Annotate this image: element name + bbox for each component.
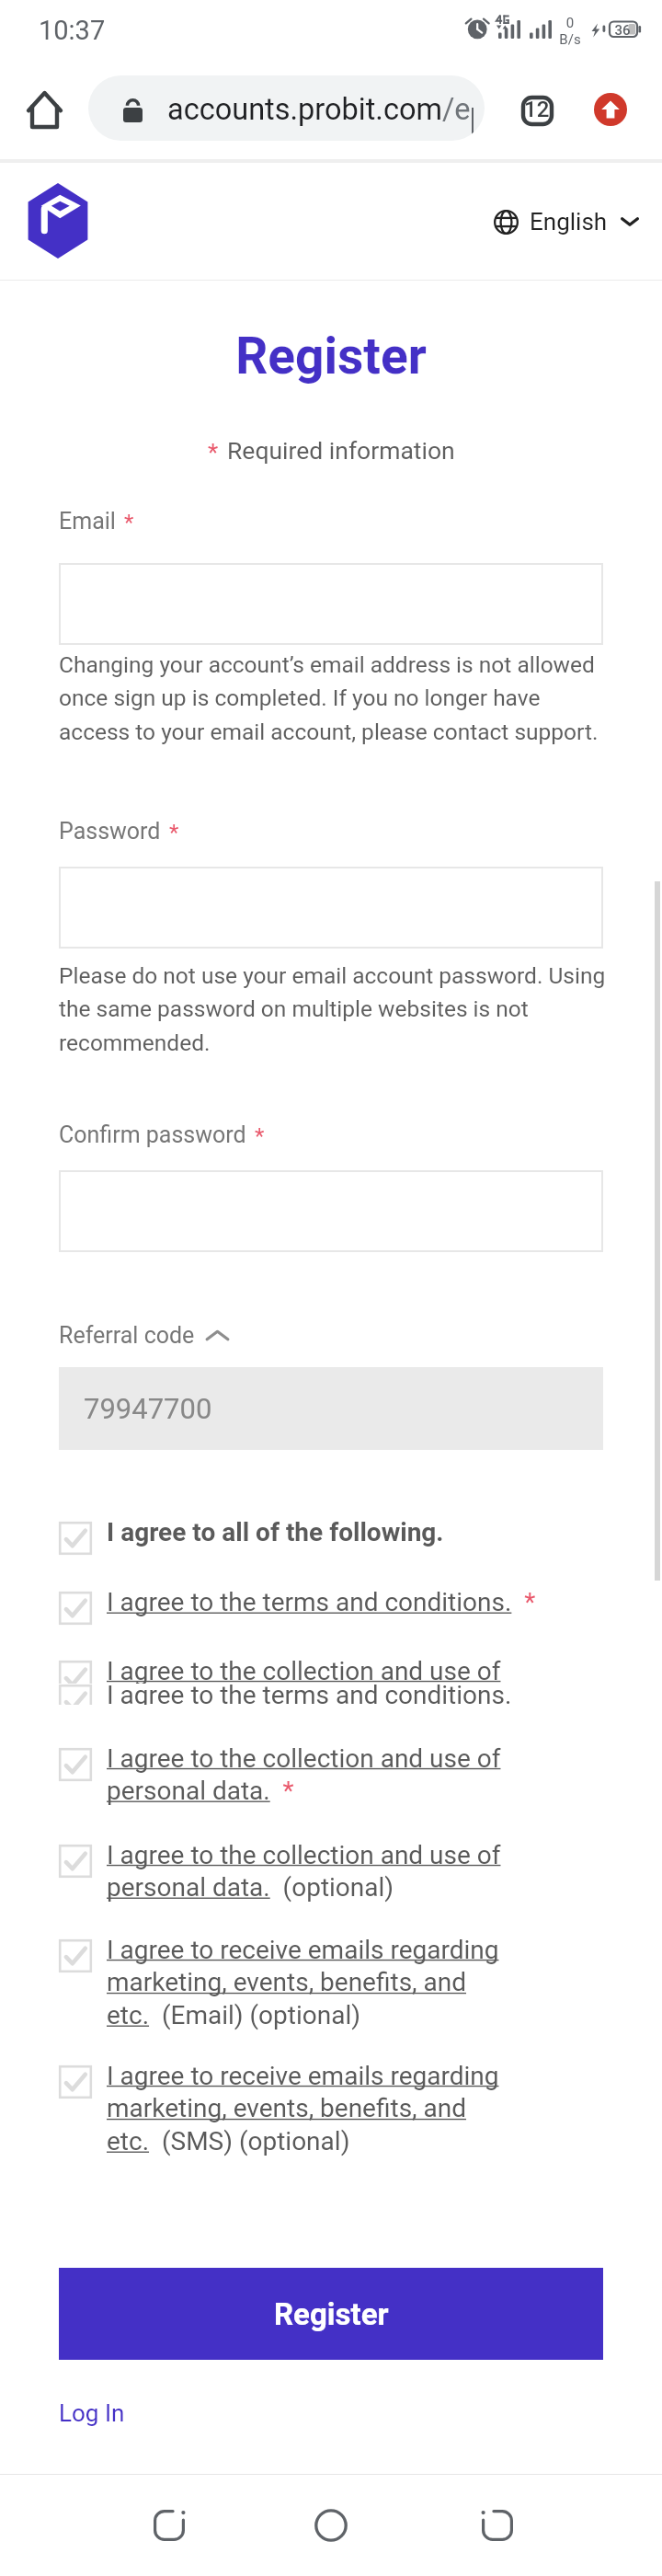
button[interactable]: [59, 867, 603, 949]
button[interactable]: English: [494, 196, 639, 247]
staticText: 36: [610, 22, 635, 39]
staticText: Changing your account’s email address is…: [59, 651, 611, 745]
staticText: Referral code: [59, 1322, 195, 1349]
staticText: Confirm password: [59, 1121, 246, 1148]
staticText: Register: [0, 327, 662, 385]
staticText: I agree to the collection and use of per…: [107, 1743, 570, 1806]
button[interactable]: Back: [114, 2493, 224, 2558]
staticText: Email: [59, 508, 116, 535]
button[interactable]: [59, 1170, 603, 1252]
staticText: *: [255, 1123, 265, 1149]
staticText: I agree to the collection and use of per…: [107, 1656, 570, 1684]
button[interactable]: I agree to receive emails regarding mark…: [59, 1935, 574, 2030]
button[interactable]: Log In: [59, 2399, 125, 2427]
staticText: 10:37: [39, 15, 106, 46]
staticText: 0: [559, 15, 581, 31]
staticText: Register: [274, 2296, 389, 2332]
staticText: I agree to the collection and use of per…: [107, 1840, 570, 1903]
staticText: Required information: [227, 436, 455, 465]
button[interactable]: Open tabs: 12: [509, 83, 565, 138]
button[interactable]: 79947700: [59, 1367, 603, 1450]
staticText: English: [530, 208, 608, 236]
staticText: Password: [59, 818, 161, 845]
staticText: 79947700: [84, 1392, 212, 1425]
button[interactable]: Recent apps: [442, 2493, 553, 2558]
button[interactable]: Register: [59, 2268, 603, 2360]
staticText: I agree to receive emails regarding mark…: [107, 1935, 570, 2030]
staticText: I agree to all of the following.: [107, 1517, 570, 1547]
staticText: accounts.probit.com/e: [167, 92, 471, 127]
button[interactable]: Referral code: [59, 1322, 230, 1349]
button[interactable]: I agree to the collection and use of per…: [59, 1656, 574, 1684]
staticText: *: [169, 820, 179, 845]
button[interactable]: accounts.probit.com/e: [88, 75, 485, 141]
staticText: Please do not use your email account pas…: [59, 962, 611, 1056]
button[interactable]: Home: [13, 77, 75, 140]
button[interactable]: I agree to the terms and conditions. *: [59, 1587, 574, 1620]
staticText: I agree to the terms and conditions. *: [107, 1587, 570, 1617]
button[interactable]: I agree to receive emails regarding mark…: [59, 2061, 574, 2156]
staticText: I agree to receive emails regarding mark…: [107, 2061, 570, 2156]
button[interactable]: Home: [276, 2493, 386, 2558]
button[interactable]: ProBit home: [20, 183, 96, 259]
button[interactable]: Update available: [594, 93, 627, 126]
staticText: B/s: [559, 31, 581, 48]
button[interactable]: [59, 563, 603, 645]
button[interactable]: I agree to the collection and use of per…: [59, 1743, 574, 1806]
button[interactable]: I agree to all of the following.: [59, 1517, 574, 1550]
staticText: I agree to the terms and conditions.: [107, 1680, 570, 1710]
staticText: *: [124, 510, 134, 535]
staticText: *: [208, 439, 219, 466]
button[interactable]: I agree to the collection and use of per…: [59, 1840, 574, 1903]
staticText: 12: [524, 97, 550, 122]
